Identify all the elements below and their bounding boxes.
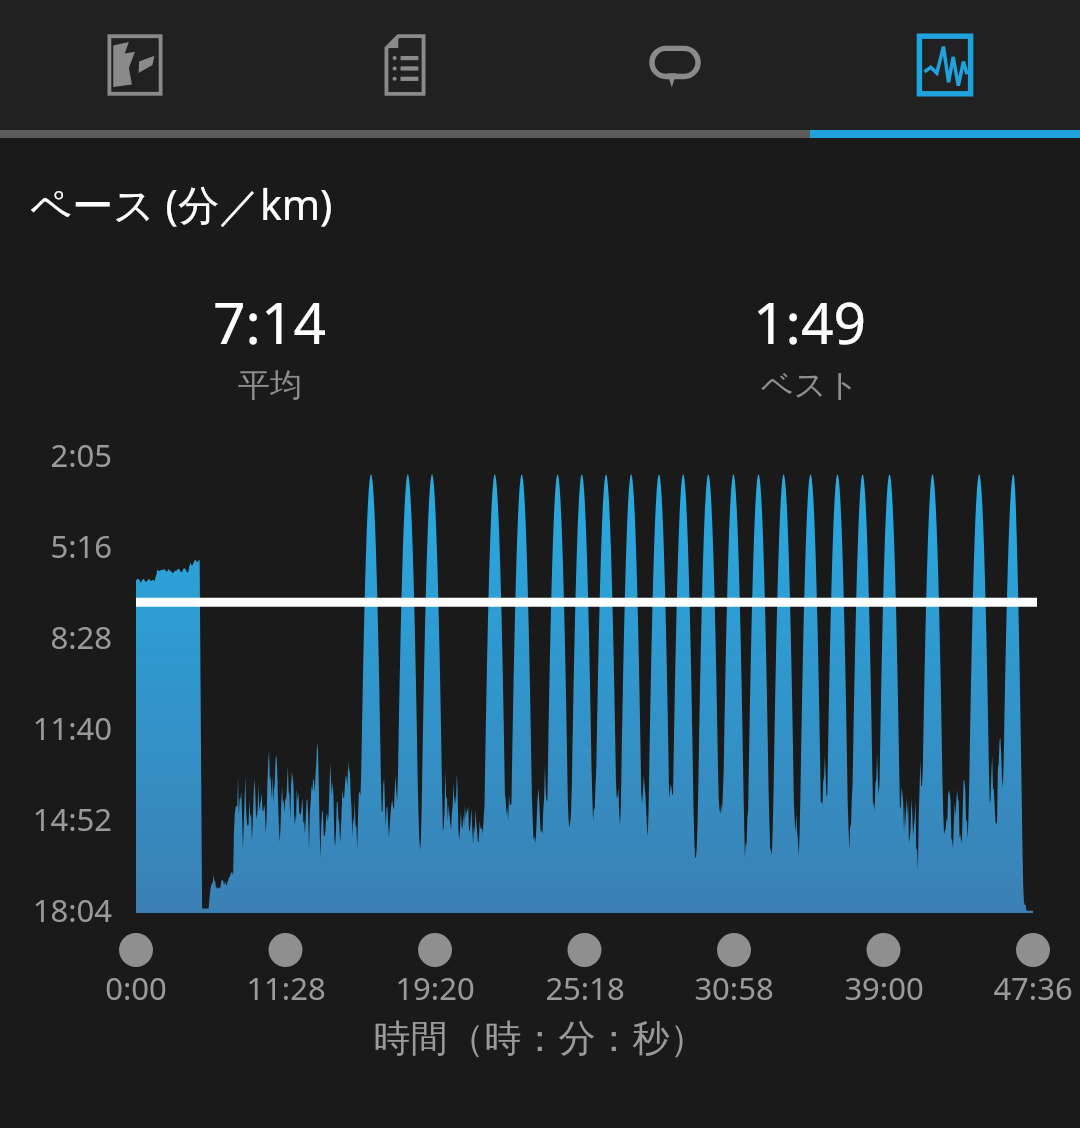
staticText: 8:28 bbox=[0, 616, 112, 658]
button[interactable]: Laps bbox=[540, 0, 810, 130]
staticText: ベスト bbox=[761, 365, 860, 405]
button[interactable]: Map bbox=[0, 0, 270, 130]
button[interactable]: Charts bbox=[810, 0, 1080, 130]
staticText: 25:18 bbox=[505, 967, 665, 1009]
button[interactable]: Details bbox=[270, 0, 540, 130]
staticText: ペース (分／km) bbox=[30, 176, 333, 232]
staticText: 平均 bbox=[238, 365, 302, 405]
staticText: 時間（時：分：秒） bbox=[0, 1015, 1080, 1062]
staticText: 7:14 bbox=[213, 283, 327, 361]
staticText: 11:28 bbox=[206, 967, 366, 1009]
staticText: 14:52 bbox=[0, 798, 112, 840]
staticText: 5:16 bbox=[0, 525, 112, 567]
staticText: 30:58 bbox=[654, 967, 814, 1009]
staticText: 18:04 bbox=[0, 889, 112, 931]
staticText: 0:00 bbox=[56, 967, 216, 1009]
staticText: 1:49 bbox=[753, 283, 867, 361]
staticText: 19:20 bbox=[355, 967, 515, 1009]
staticText: 39:00 bbox=[804, 967, 964, 1009]
staticText: 11:40 bbox=[0, 707, 112, 749]
staticText: 47:36 bbox=[953, 967, 1080, 1009]
staticText: 2:05 bbox=[0, 434, 112, 476]
